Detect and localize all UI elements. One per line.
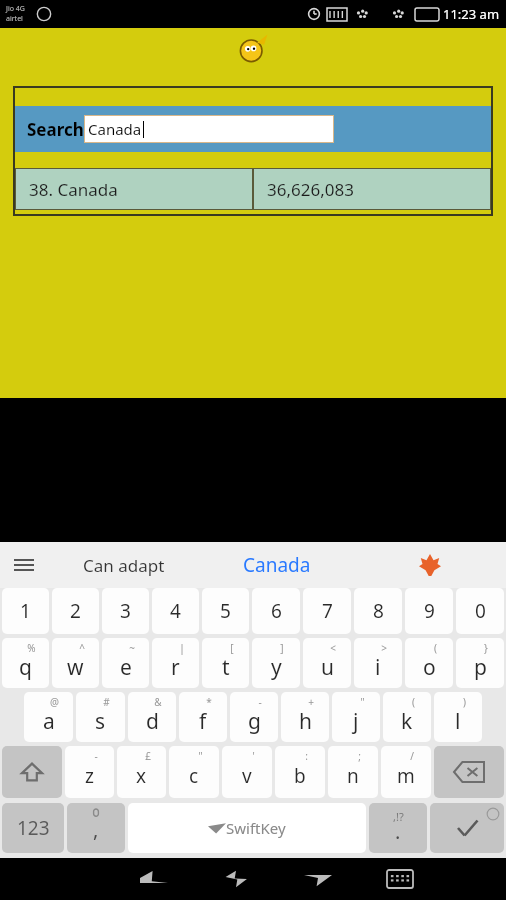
button[interactable]: % xyxy=(2,638,49,688)
staticText: g xyxy=(248,707,261,736)
button[interactable]: Emoji xyxy=(353,542,506,588)
staticText: q xyxy=(19,653,32,682)
staticText: m xyxy=(397,763,415,789)
staticText: £ xyxy=(145,749,151,763)
button[interactable]: < xyxy=(303,638,351,688)
staticText: o xyxy=(423,653,436,682)
staticText: airtel xyxy=(6,14,23,24)
button[interactable]: ' xyxy=(222,746,272,798)
staticText: p xyxy=(474,653,487,682)
button[interactable]: - xyxy=(230,692,278,742)
button[interactable]: Enter xyxy=(430,803,504,853)
staticText: 9 xyxy=(424,598,435,624)
button[interactable]: " xyxy=(169,746,219,798)
button[interactable]: @ xyxy=(24,692,73,742)
button[interactable]: Menu xyxy=(0,542,48,588)
button[interactable]: * xyxy=(179,692,227,742)
button[interactable]: Shift xyxy=(2,746,62,798)
staticText: a xyxy=(43,707,55,736)
staticText: 7 xyxy=(322,598,333,624)
button[interactable]: Canada xyxy=(200,542,353,588)
staticText: [ xyxy=(230,641,234,655)
button[interactable]: 123 xyxy=(2,803,64,853)
staticText: - xyxy=(94,749,98,763)
staticText: 1 xyxy=(20,598,31,624)
staticText: ; xyxy=(358,749,361,763)
button[interactable]: ; xyxy=(328,746,378,798)
button[interactable]: Back xyxy=(113,858,195,900)
staticText: ) xyxy=(463,695,466,709)
button[interactable]: £ xyxy=(117,746,166,798)
button[interactable]: : xyxy=(275,746,325,798)
staticText: j xyxy=(353,707,359,736)
staticText: b xyxy=(294,763,306,789)
button[interactable]: 0 xyxy=(456,588,504,634)
staticText: " xyxy=(198,749,203,763)
button[interactable]: 1 xyxy=(2,588,49,634)
button[interactable]: & xyxy=(128,692,176,742)
button[interactable]: ( xyxy=(405,638,453,688)
button[interactable]: " xyxy=(332,692,380,742)
staticText: Can adapt xyxy=(83,554,165,577)
button[interactable]: / xyxy=(381,746,431,798)
staticText: : xyxy=(305,749,308,763)
staticText: } xyxy=(484,641,488,655)
button[interactable]: ( xyxy=(383,692,431,742)
button[interactable]: ~ xyxy=(102,638,149,688)
staticText: u xyxy=(321,653,334,682)
staticText: Canada xyxy=(243,552,311,578)
button[interactable]: , xyxy=(67,803,125,853)
button[interactable]: Recents xyxy=(277,858,359,900)
button[interactable]: Can adapt xyxy=(48,542,200,588)
staticText: 8 xyxy=(373,598,384,624)
staticText: | xyxy=(179,641,185,655)
button[interactable]: Home xyxy=(195,858,277,900)
staticText: / xyxy=(410,749,414,763)
button[interactable]: 4 xyxy=(152,588,199,634)
staticText: f xyxy=(199,707,207,736)
button[interactable]: 9 xyxy=(405,588,453,634)
staticText: < xyxy=(330,641,336,655)
staticText: ( xyxy=(434,641,437,655)
staticText: Jio 4G xyxy=(6,4,25,14)
staticText: , xyxy=(93,816,99,843)
button[interactable]: 6 xyxy=(252,588,300,634)
button[interactable]: 8 xyxy=(354,588,402,634)
staticText: Canada xyxy=(88,119,142,139)
button[interactable]: # xyxy=(76,692,125,742)
staticText: ' xyxy=(252,749,255,763)
button[interactable]: Canada xyxy=(84,115,334,143)
staticText: > xyxy=(381,641,387,655)
button[interactable]: Space xyxy=(128,803,366,853)
button[interactable]: 5 xyxy=(202,588,249,634)
staticText: r xyxy=(171,653,180,682)
button[interactable]: Keyboard xyxy=(359,858,441,900)
staticText: & xyxy=(154,695,162,709)
button[interactable]: Search xyxy=(13,106,493,152)
button[interactable]: ,!? xyxy=(369,803,427,853)
button[interactable]: | xyxy=(152,638,199,688)
button[interactable]: + xyxy=(281,692,329,742)
staticText: y xyxy=(271,653,282,682)
staticText: c xyxy=(189,763,199,789)
button[interactable]: ] xyxy=(252,638,300,688)
staticText: l xyxy=(455,707,461,736)
staticText: v xyxy=(242,763,252,789)
button[interactable]: 7 xyxy=(303,588,351,634)
staticText: z xyxy=(85,763,94,789)
staticText: w xyxy=(67,653,84,682)
staticText: ] xyxy=(280,641,284,655)
button[interactable]: - xyxy=(65,746,114,798)
button[interactable]: } xyxy=(456,638,504,688)
button[interactable]: 2 xyxy=(52,588,99,634)
staticText: i xyxy=(375,653,381,682)
button[interactable]: 3 xyxy=(102,588,149,634)
button[interactable]: > xyxy=(354,638,402,688)
staticText: x xyxy=(136,763,147,789)
staticText: 4 xyxy=(170,598,181,624)
button[interactable]: 38. Canada xyxy=(15,168,491,210)
button[interactable]: [ xyxy=(202,638,249,688)
button[interactable]: Backspace xyxy=(434,746,504,798)
button[interactable]: ^ xyxy=(52,638,99,688)
button[interactable]: ) xyxy=(434,692,482,742)
